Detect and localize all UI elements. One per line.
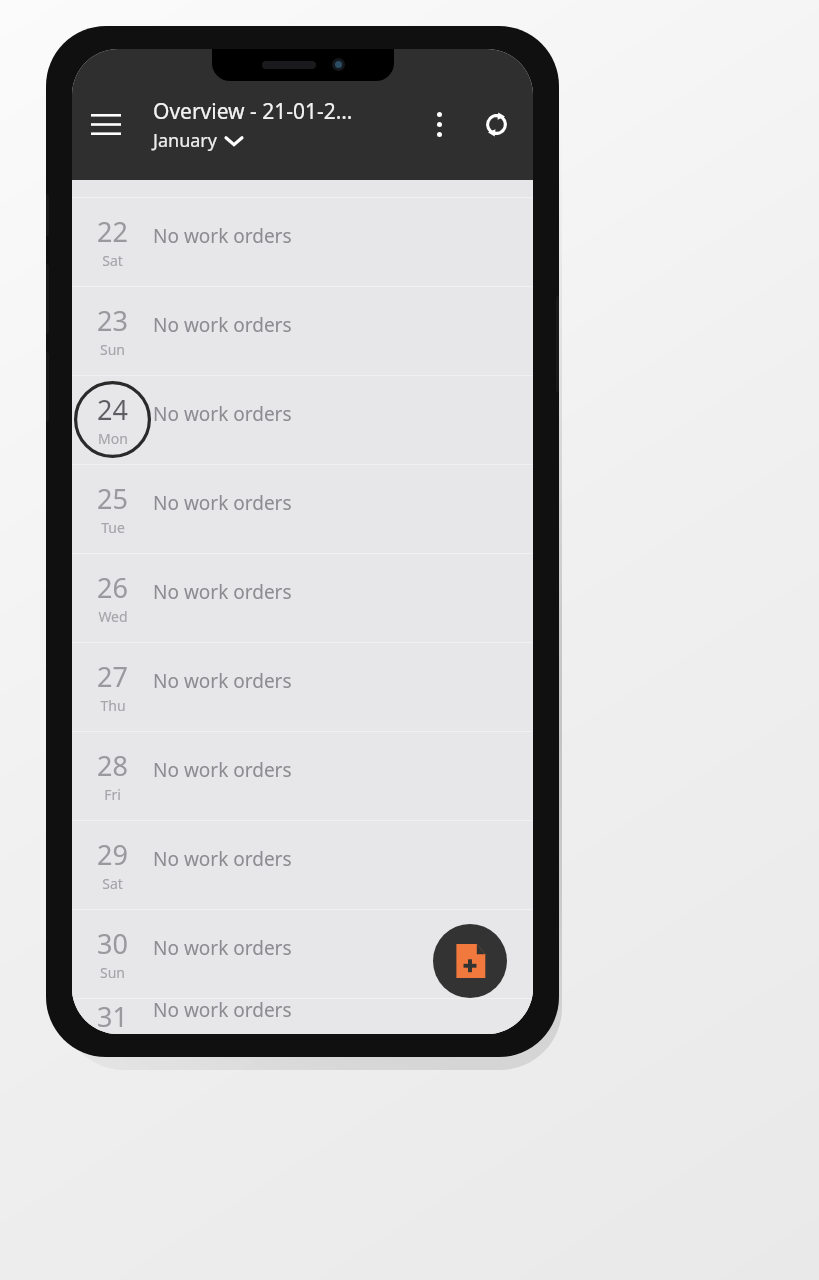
staticText: 28 [97,747,128,784]
staticText: 26 [97,569,128,606]
button[interactable]: 24 [72,375,533,464]
button[interactable]: 30 [72,909,533,998]
button[interactable]: Open navigation menu [80,98,132,150]
staticText: No work orders [153,997,292,1023]
staticText: Mon [98,429,128,448]
button[interactable]: 25 [72,464,533,553]
button[interactable]: 28 [72,731,533,820]
staticText: No work orders [153,757,292,783]
staticText: Tue [101,518,125,537]
staticText: Sat [102,251,123,270]
staticText: 25 [97,480,128,517]
staticText: Fri [104,785,121,804]
staticText: No work orders [153,579,292,605]
button[interactable]: Sync [472,100,520,148]
staticText: 23 [97,302,128,339]
button[interactable]: January [153,128,242,153]
staticText: Sun [100,963,125,982]
button[interactable]: 23 [72,286,533,375]
button[interactable]: More options [416,101,462,147]
staticText: No work orders [153,490,292,516]
staticText: No work orders [153,223,292,249]
staticText: No work orders [153,668,292,694]
staticText: Wed [98,607,128,626]
button[interactable]: 22 [72,197,533,286]
staticText: No work orders [153,401,292,427]
staticText: January [153,128,217,153]
staticText: Overview - 21-01-2… [153,97,353,126]
staticText: 29 [97,836,128,873]
button[interactable]: 27 [72,642,533,731]
staticText: 31 [97,998,128,1034]
button[interactable]: Add work order [433,924,507,998]
button[interactable]: 31 [72,998,533,1034]
staticText: 22 [97,213,128,250]
staticText: Sat [102,874,123,893]
staticText: No work orders [153,846,292,872]
staticText: Thu [100,696,126,715]
button[interactable]: 29 [72,820,533,909]
staticText: 27 [97,658,128,695]
staticText: Sun [100,340,125,359]
button[interactable]: 26 [72,553,533,642]
staticText: 24 [97,391,128,428]
staticText: No work orders [153,935,292,961]
staticText: 30 [97,925,128,962]
staticText: No work orders [153,312,292,338]
